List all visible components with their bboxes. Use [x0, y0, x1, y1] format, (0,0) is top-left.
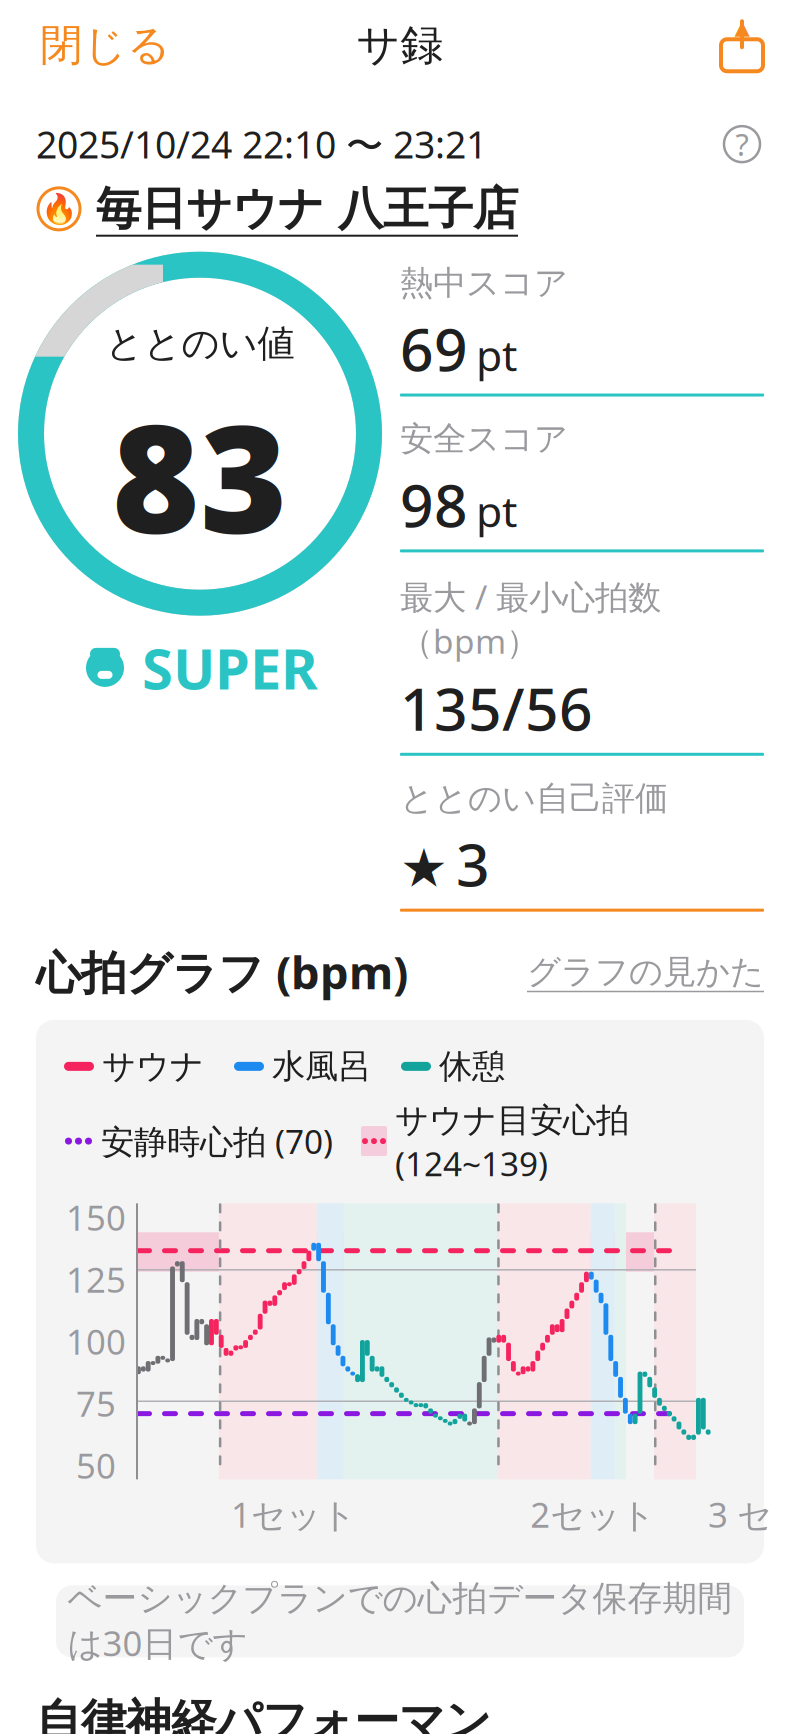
- staticText: 🔥: [40, 192, 77, 226]
- staticText: 毎日サウナ 八王子店: [96, 181, 518, 237]
- button[interactable]: グラフの見かた: [527, 945, 764, 998]
- staticText: 50: [76, 1442, 116, 1488]
- staticText: 2セット: [530, 1491, 655, 1537]
- staticText: ★: [400, 838, 448, 898]
- staticText: 心拍グラフ (bpm): [36, 942, 408, 1002]
- button[interactable]: 閉じる: [36, 11, 175, 79]
- staticText: グラフの見かた: [527, 951, 764, 992]
- staticText: 閉じる: [40, 19, 171, 71]
- staticText: サ録: [356, 19, 443, 71]
- staticText: ▲: [734, 16, 749, 39]
- staticText: pt: [476, 482, 517, 539]
- staticText: サウナ: [102, 1046, 204, 1087]
- staticText: 83: [112, 376, 288, 575]
- button[interactable]: ヘルプ: [720, 122, 764, 166]
- staticText: ベーシックプランでの心拍データ保存期間は30日です: [67, 1577, 732, 1666]
- staticText: 水風呂: [272, 1046, 371, 1087]
- staticText: 125: [66, 1256, 126, 1302]
- staticText: ととのい自己評価: [400, 778, 668, 819]
- staticText: 98: [400, 465, 468, 543]
- staticText: 150: [66, 1194, 126, 1240]
- button[interactable]: 🔥: [0, 169, 800, 237]
- staticText: 69: [400, 310, 468, 387]
- staticText: 1セット: [231, 1491, 356, 1537]
- staticText: 135/56: [400, 669, 593, 747]
- staticText: 3 セ: [708, 1491, 772, 1537]
- staticText: ととのい値: [105, 321, 294, 366]
- staticText: 2025/10/24 22:10 〜 23:21: [36, 119, 487, 169]
- staticText: 休憩: [439, 1046, 505, 1087]
- staticText: 安全スコア: [400, 418, 568, 459]
- staticText: 熱中スコア: [400, 263, 568, 304]
- staticText: 75: [76, 1380, 116, 1426]
- staticText: サウナ目安心拍 (124~139): [395, 1097, 629, 1185]
- button[interactable]: 共有: [720, 13, 764, 77]
- staticText: pt: [476, 326, 517, 383]
- staticText: 最大 / 最小心拍数（bpm）: [400, 574, 661, 663]
- staticText: 3: [456, 825, 490, 903]
- staticText: 安静時心拍 (70): [101, 1119, 333, 1163]
- staticText: ?: [735, 124, 748, 164]
- staticText: 自律神経パフォーマンス: [36, 1693, 491, 1734]
- staticText: 100: [66, 1318, 126, 1364]
- staticText: SUPER: [142, 631, 318, 705]
